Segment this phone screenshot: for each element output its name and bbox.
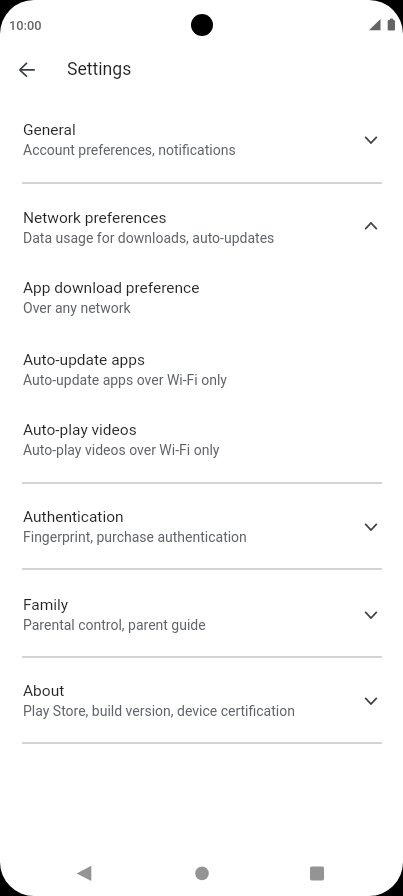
button[interactable]: Auto-update apps [0,334,403,405]
staticText: Over any network [23,300,131,316]
staticText: 10:00 [9,18,42,33]
button[interactable]: Auto-play videos [0,404,403,475]
staticText: Fingerprint, purchase authentication [23,529,247,545]
staticText: App download preference [23,279,200,297]
button[interactable]: Network preferences [0,192,403,263]
staticText: Auto-play videos over Wi-Fi only [23,442,220,458]
staticText: Auto-play videos [23,421,137,439]
staticText: General [23,121,76,139]
staticText: Settings [67,59,132,80]
button[interactable]: Recent apps [293,848,341,896]
button[interactable]: Home [178,848,226,896]
staticText: Parental control, parent guide [23,617,206,633]
staticText: Network preferences [23,209,167,227]
staticText: Auto-update apps over Wi-Fi only [23,372,227,388]
staticText: Auto-update apps [23,351,146,369]
button[interactable]: App download preference [0,262,403,333]
button[interactable]: Back [60,848,108,896]
button[interactable]: Back [14,58,38,82]
staticText: Authentication [23,508,124,526]
button[interactable]: Family [0,579,403,650]
button[interactable]: General [0,104,403,175]
staticText: About [23,682,65,700]
staticText: Account preferences, notifications [23,142,236,158]
staticText: Play Store, build version, device certif… [23,703,295,719]
staticText: Family [23,596,69,614]
staticText: Data usage for downloads, auto-updates [23,230,275,246]
button[interactable]: Authentication [0,491,403,562]
button[interactable]: About [0,665,403,736]
